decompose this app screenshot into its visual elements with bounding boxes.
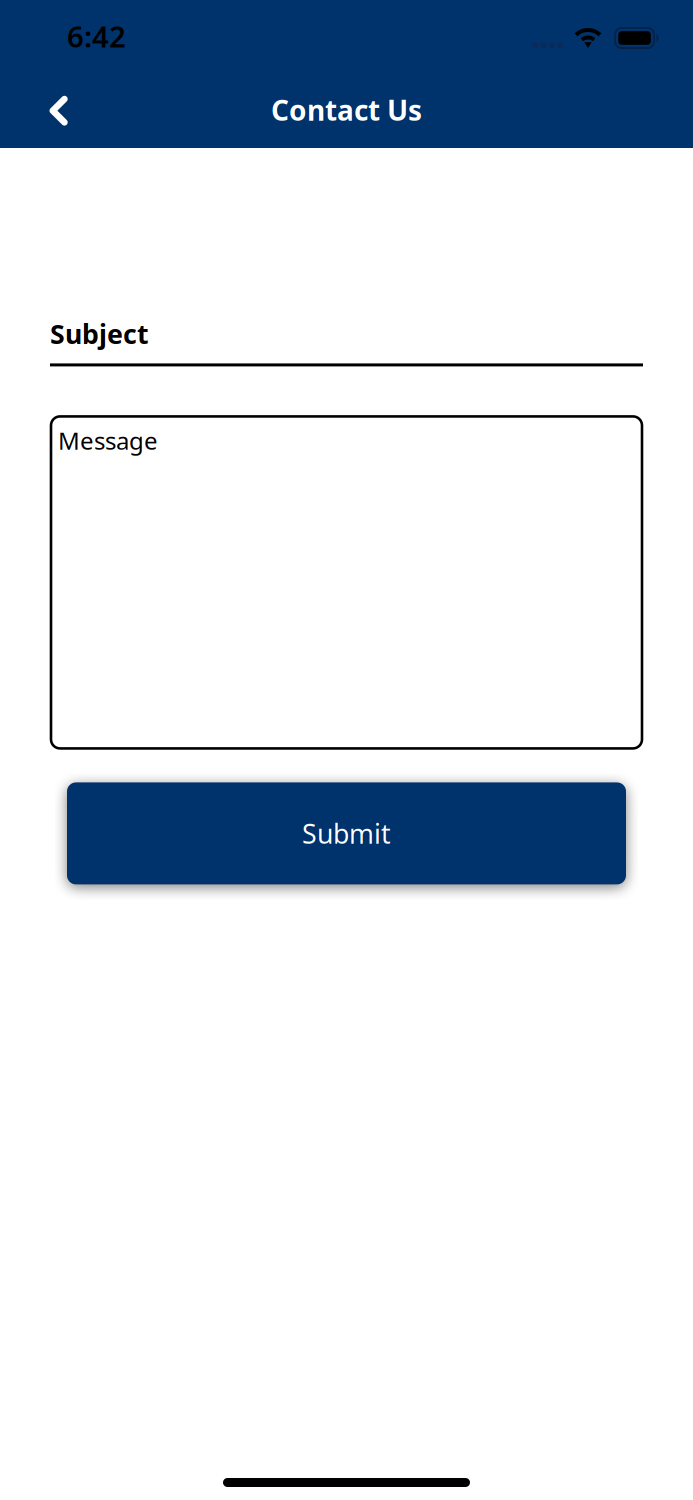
button[interactable]: Submit <box>67 782 626 884</box>
staticText: 6:42 <box>67 16 126 55</box>
staticText: Contact Us <box>271 91 422 129</box>
staticText: Message <box>58 424 158 456</box>
button[interactable]: Message <box>51 416 642 748</box>
staticText: Submit <box>302 816 391 851</box>
staticText: Subject <box>50 316 149 351</box>
button[interactable]: Back <box>39 87 84 132</box>
button[interactable]: Subject <box>50 316 643 366</box>
